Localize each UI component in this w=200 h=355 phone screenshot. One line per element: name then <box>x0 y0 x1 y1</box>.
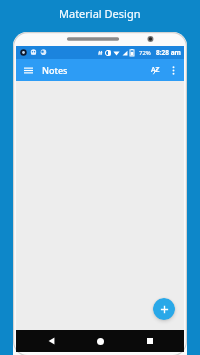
button[interactable]: Sort alphabetically <box>146 61 164 79</box>
button[interactable]: Back <box>36 330 66 352</box>
button[interactable]: More options <box>165 62 181 78</box>
button[interactable]: Recent apps <box>135 330 165 352</box>
staticText: 8:28 am <box>156 48 181 57</box>
staticText: Notes <box>42 64 68 76</box>
button[interactable]: Home <box>85 330 115 352</box>
staticText: Material Design <box>59 6 141 21</box>
button[interactable]: Add note <box>153 298 175 320</box>
staticText: AZ <box>151 65 160 75</box>
button[interactable]: Open navigation drawer <box>19 61 37 79</box>
staticText: 72% <box>139 49 151 57</box>
